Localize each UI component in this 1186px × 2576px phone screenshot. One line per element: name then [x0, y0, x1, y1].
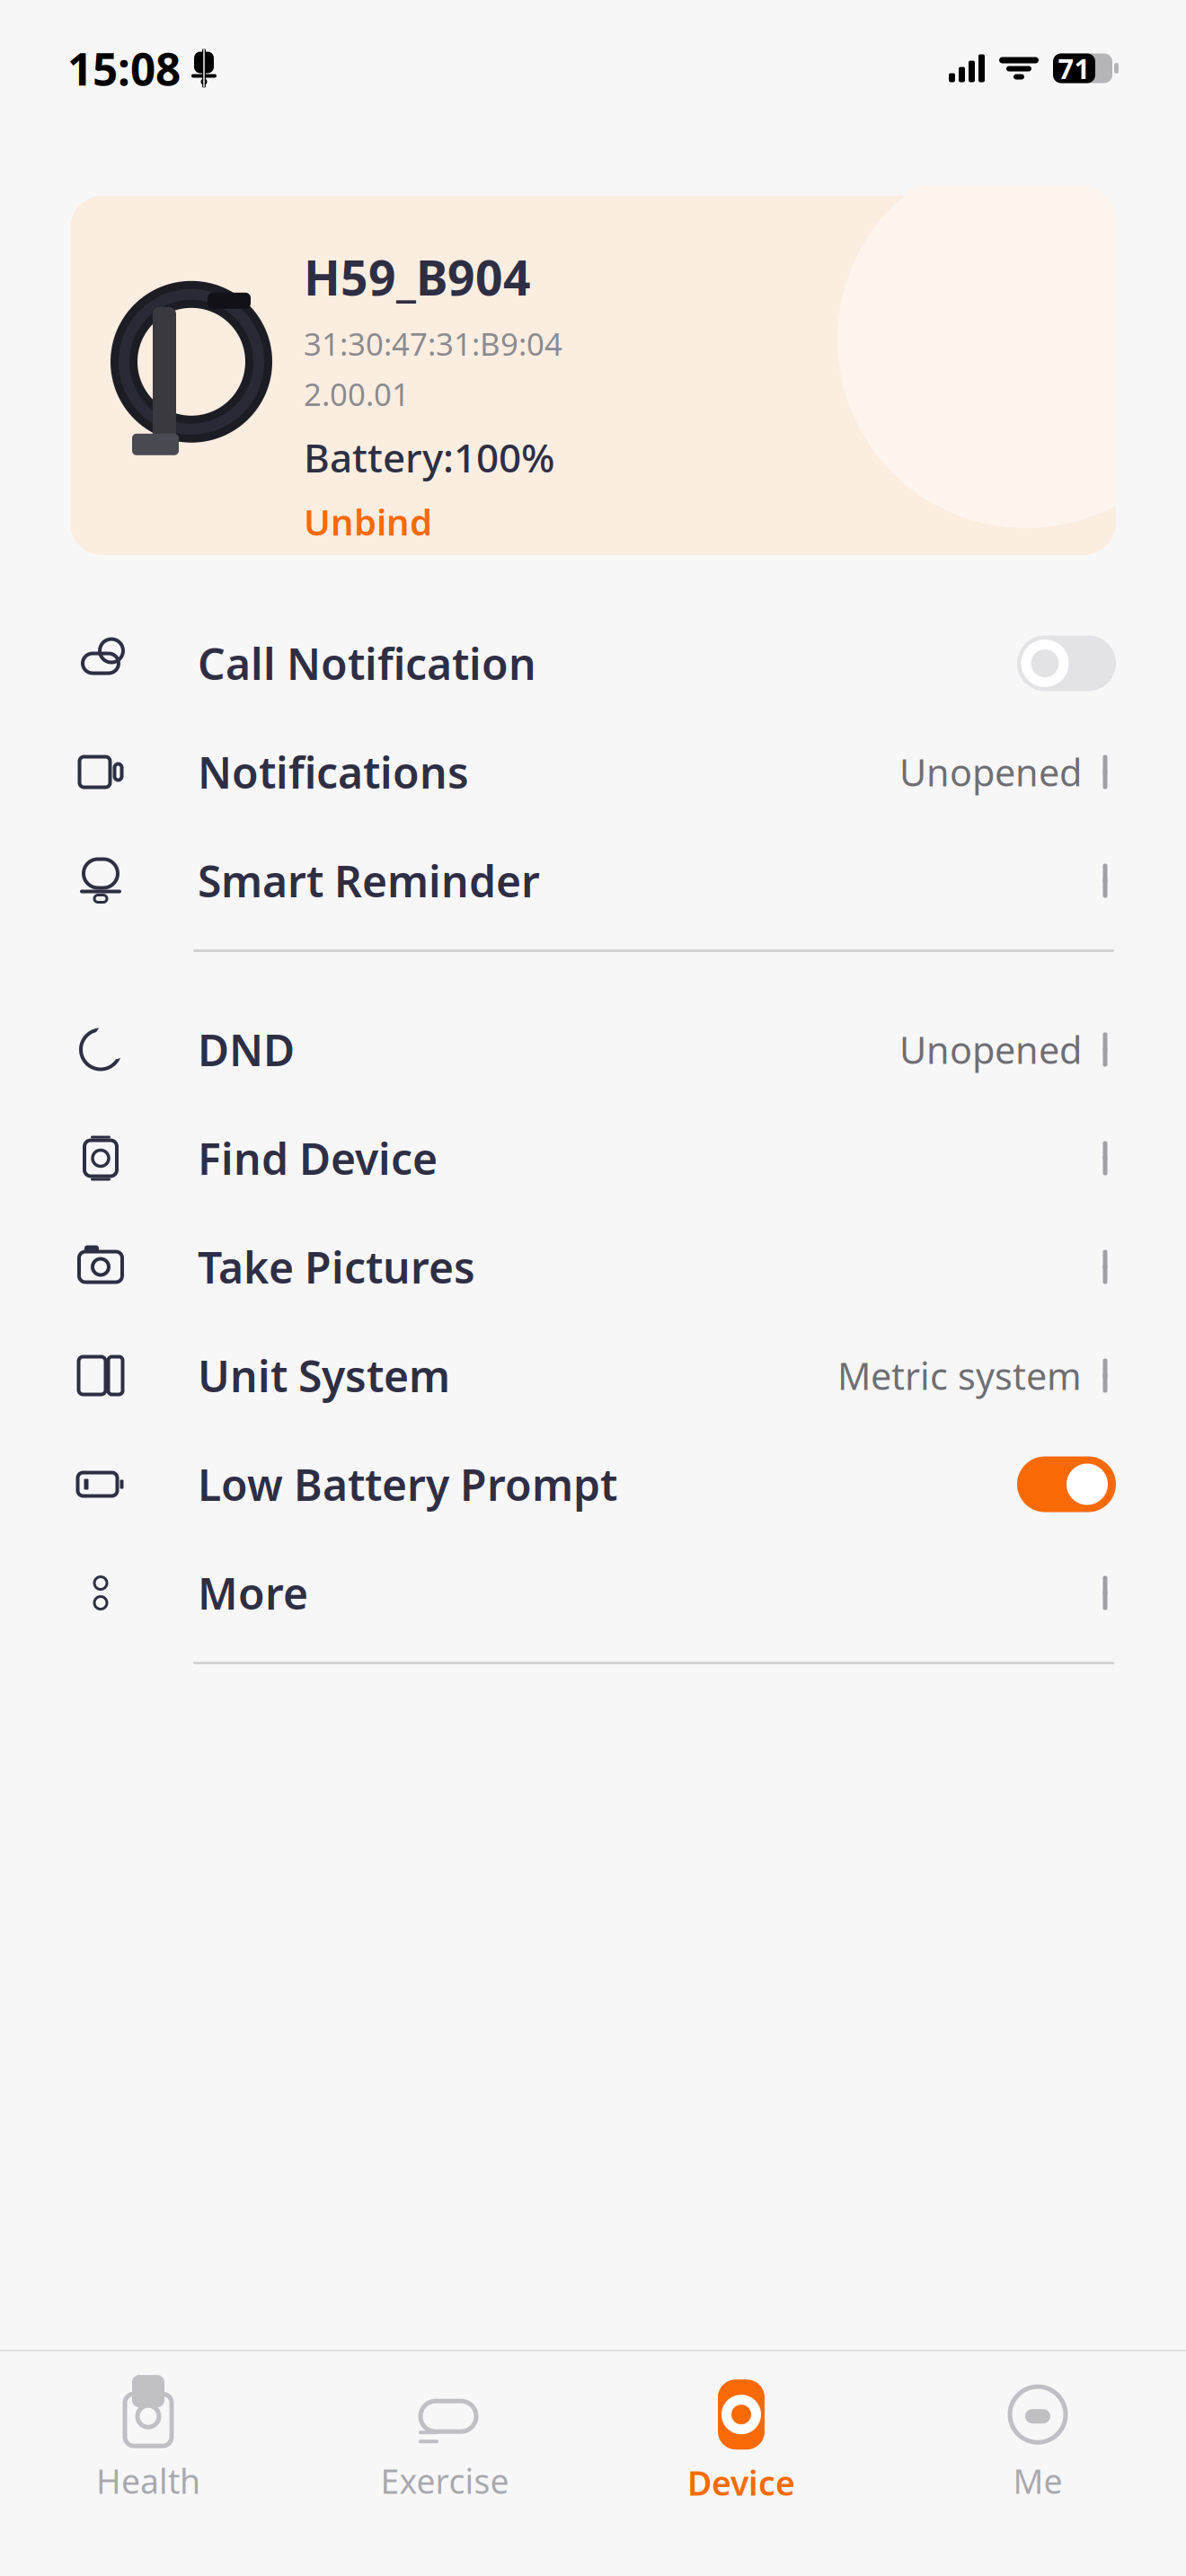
staticText: DND: [198, 1021, 295, 1078]
staticText: 2.00.01: [304, 373, 410, 415]
button[interactable]: Smart Reminder: [0, 826, 1186, 935]
button[interactable]: Exercise: [296, 2362, 593, 2503]
staticText: Notifications: [198, 743, 469, 801]
button[interactable]: DND: [0, 995, 1186, 1104]
staticText: Take Pictures: [198, 1238, 475, 1295]
staticText: 31:30:47:31:B9:04: [304, 323, 562, 364]
staticText: Call Notification: [198, 635, 536, 692]
staticText: Unit System: [198, 1347, 450, 1404]
button[interactable]: More: [0, 1539, 1186, 1647]
staticText: More: [198, 1564, 308, 1621]
button[interactable]: Take Pictures: [0, 1213, 1186, 1321]
button[interactable]: Call Notification: [0, 609, 1186, 718]
staticText: Unbind: [304, 498, 432, 545]
staticText: Unopened: [899, 747, 1082, 797]
staticText: Me: [1013, 2459, 1062, 2503]
staticText: Battery:100%: [304, 431, 554, 483]
staticText: Exercise: [381, 2459, 509, 2503]
staticText: 71: [1058, 50, 1090, 86]
button[interactable]: Low Battery Prompt: [0, 1430, 1186, 1539]
button[interactable]: Unit System: [0, 1321, 1186, 1430]
staticText: Low Battery Prompt: [198, 1456, 617, 1513]
staticText: Device: [687, 2460, 795, 2505]
staticText: H59_B904: [304, 245, 531, 309]
staticText: Smart Reminder: [198, 852, 540, 909]
staticText: Find Device: [198, 1130, 438, 1187]
staticText: Unopened: [899, 1025, 1082, 1074]
button[interactable]: Unbind: [304, 498, 432, 545]
button[interactable]: Notifications: [0, 718, 1186, 826]
button[interactable]: Device: [593, 2360, 889, 2505]
staticText: 15:08: [67, 39, 181, 98]
staticText: Health: [96, 2459, 200, 2503]
button[interactable]: Me: [889, 2362, 1186, 2503]
button[interactable]: Health: [0, 2362, 296, 2503]
staticText: Metric system: [837, 1351, 1082, 1400]
button[interactable]: Find Device: [0, 1104, 1186, 1213]
